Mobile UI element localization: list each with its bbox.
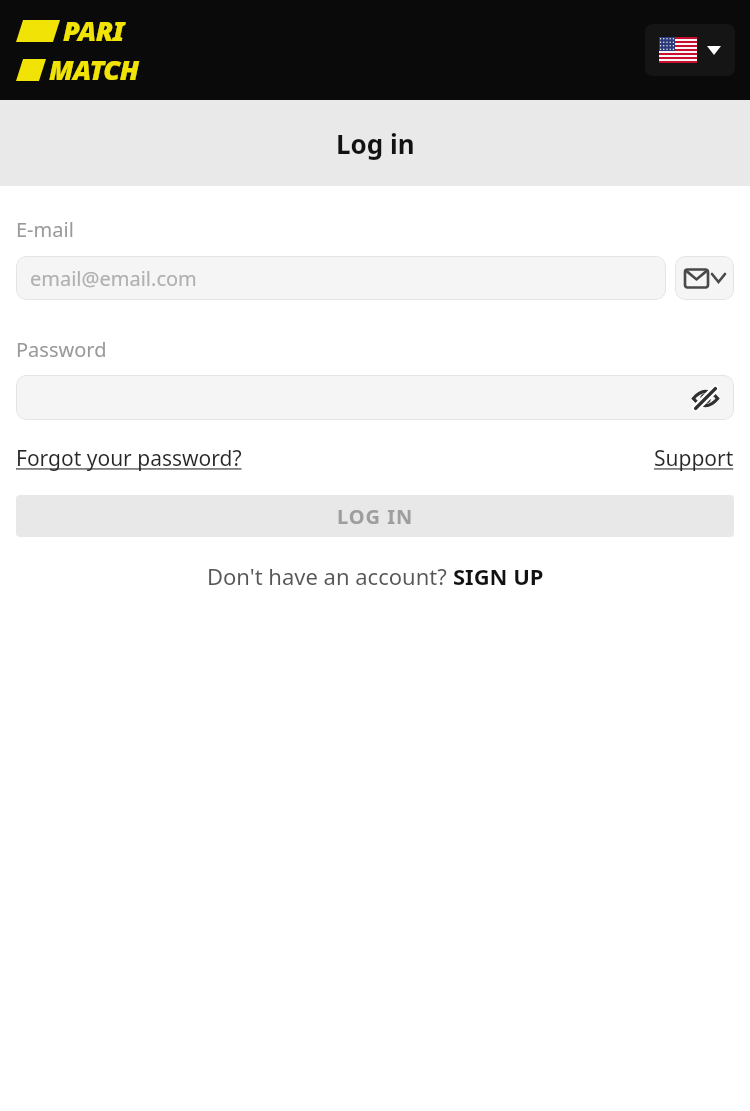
button[interactable]: Support xyxy=(654,444,734,473)
button[interactable]: Forgot your password? xyxy=(16,444,242,473)
staticText: SIGN UP xyxy=(453,561,544,591)
button[interactable]: Show password xyxy=(690,383,720,413)
staticText: Don't have an account? xyxy=(207,561,453,591)
button[interactable]: Select language xyxy=(645,24,735,76)
staticText: Password xyxy=(16,336,107,363)
button[interactable]: LOG IN xyxy=(16,495,734,537)
button[interactable]: Choose login method xyxy=(675,256,734,300)
button[interactable]: SIGN UP xyxy=(453,561,544,591)
staticText: Log in xyxy=(336,126,415,161)
staticText: E-mail xyxy=(16,216,74,243)
staticText: MATCH xyxy=(49,51,139,88)
staticText: email@email.com xyxy=(30,265,197,292)
staticText: LOG IN xyxy=(337,503,414,530)
button[interactable]: email@email.com xyxy=(16,256,666,300)
staticText: PARI xyxy=(63,12,124,49)
staticText: Support xyxy=(654,444,734,473)
staticText: Forgot your password? xyxy=(16,444,242,473)
button[interactable]: Show password xyxy=(16,375,734,420)
